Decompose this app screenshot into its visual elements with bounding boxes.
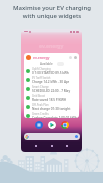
staticText: ev.energy	[39, 43, 64, 50]
button[interactable]: Uplift Charging	[26, 66, 77, 75]
staticText: Off-Peak Plan	[32, 103, 49, 107]
staticText: Carbon Complete 1:00:02 kWh	[32, 116, 77, 118]
button[interactable]: Settings	[74, 56, 77, 59]
staticText: Maximise your EV charging with unique wi…	[13, 4, 91, 20]
button[interactable]: Chrome	[61, 121, 69, 129]
staticText: Smart Charge	[32, 85, 49, 89]
staticText: Next charge 01:30 tonight	[32, 107, 71, 111]
staticText: Uplift Charging	[32, 67, 51, 71]
staticText: Green Credits	[32, 112, 49, 116]
button[interactable]: Off-Peak Plan	[26, 102, 77, 111]
staticText: Grid Boost	[32, 94, 45, 98]
staticText: Charge 14.2 kWh - 30 Apr	[32, 80, 70, 84]
button[interactable]: Play Store	[48, 121, 56, 129]
staticText: SCHEDULED 22:00 - 7 May	[32, 89, 71, 93]
staticText: Rate saved 18.5 P/KWH	[32, 98, 67, 102]
button[interactable]: Grid Boost	[26, 93, 77, 102]
button[interactable]: Smart Charge	[26, 84, 77, 93]
button[interactable]: Photos	[35, 121, 43, 129]
button[interactable]: Search	[24, 133, 80, 140]
button[interactable]: Info	[69, 56, 72, 59]
staticText: Available	[40, 62, 53, 66]
button[interactable]: EV Tariff Switch	[26, 75, 77, 84]
button[interactable]: Green Credits	[26, 111, 77, 118]
staticText: EV Tariff Switch	[32, 76, 51, 80]
button[interactable]: All	[57, 62, 64, 66]
staticText: 0 7:00 STARTED 89.5 kWh	[32, 71, 69, 75]
staticText: ev.energy	[33, 55, 50, 60]
